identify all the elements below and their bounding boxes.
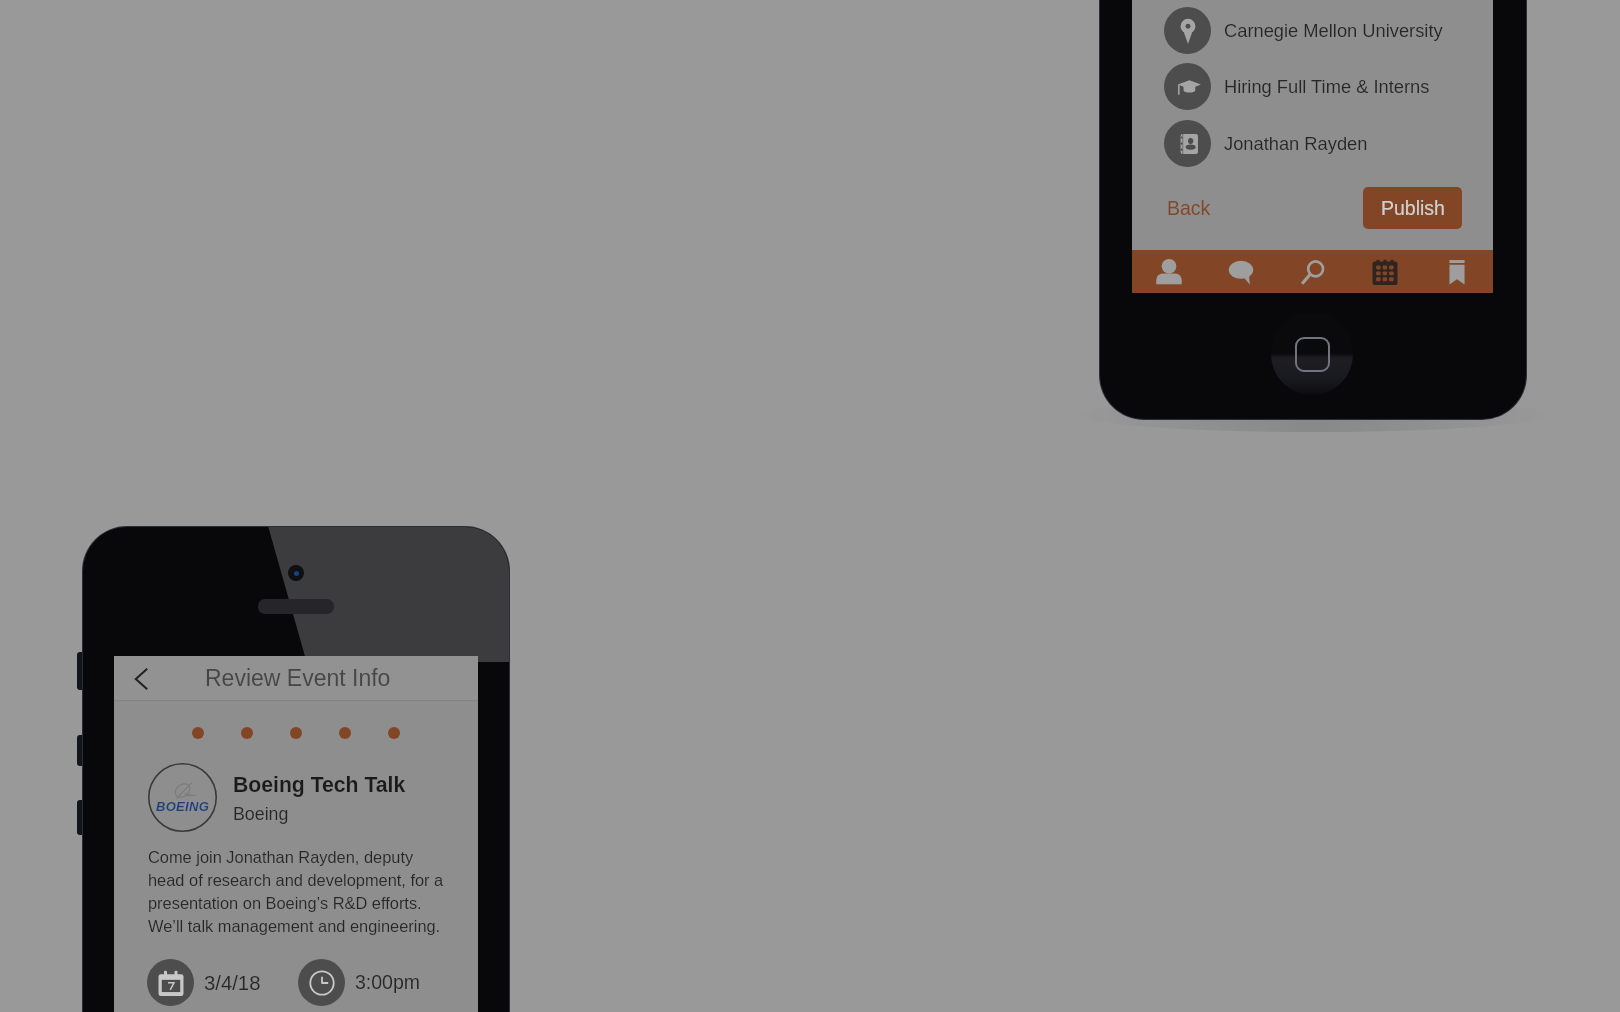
button[interactable]: Search xyxy=(1277,250,1349,293)
button[interactable]: Publish xyxy=(1363,187,1462,229)
button[interactable]: Step 3 xyxy=(290,727,302,739)
staticText: Jonathan Rayden xyxy=(1224,133,1368,153)
button[interactable]: Step 2 xyxy=(241,727,253,739)
staticText: Back xyxy=(1167,197,1211,219)
button[interactable]: Hiring Full Time & Interns xyxy=(1132,60,1493,112)
staticText: Boeing Tech Talk xyxy=(233,773,406,797)
staticText: Carnegie Mellon University xyxy=(1224,20,1443,40)
staticText: Hiring Full Time & Interns xyxy=(1224,76,1430,96)
button[interactable]: BOEING xyxy=(144,759,454,837)
button[interactable]: Back xyxy=(1154,187,1224,229)
button[interactable]: Step 4 xyxy=(339,727,351,739)
staticText: Publish xyxy=(1381,197,1445,219)
staticText: Review Event Info xyxy=(205,665,391,691)
staticText: BOEING xyxy=(156,799,210,814)
button[interactable]: Profile xyxy=(1132,250,1205,293)
button[interactable]: Home xyxy=(1271,313,1353,395)
button[interactable]: Step 5 xyxy=(388,727,400,739)
button[interactable]: Saved xyxy=(1421,250,1493,293)
button[interactable]: Step 1 xyxy=(192,727,204,739)
staticText: 3/4/18 xyxy=(204,972,261,995)
button[interactable]: Messages xyxy=(1205,250,1277,293)
button[interactable]: Back xyxy=(119,656,164,701)
staticText: Come join Jonathan Rayden, deputy head o… xyxy=(148,844,444,936)
button[interactable]: Calendar xyxy=(1349,250,1421,293)
staticText: Boeing xyxy=(233,804,289,824)
button[interactable]: Carnegie Mellon University xyxy=(1132,4,1493,56)
staticText: 3:00pm xyxy=(355,971,421,993)
button[interactable]: Jonathan Rayden xyxy=(1132,117,1493,169)
